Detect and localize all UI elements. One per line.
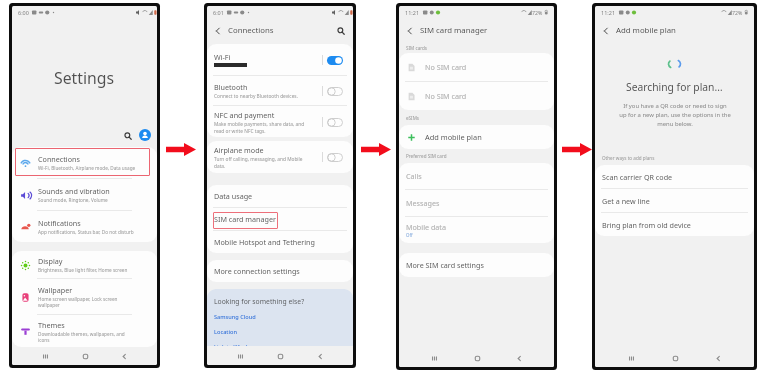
staticText: App notifications, Status bar, Do not di…	[38, 229, 134, 235]
button[interactable]: Samsung Cloud	[214, 313, 256, 321]
staticText: 72%	[732, 9, 743, 16]
button[interactable]: Wi-Fi toggle	[326, 55, 343, 65]
button[interactable]: Back	[711, 351, 725, 365]
button[interactable]: Link to Windows	[214, 343, 258, 346]
button[interactable]: Bluetooth	[207, 76, 353, 105]
button[interactable]: Home	[668, 351, 682, 365]
staticText: Wi-Fi, Bluetooth, Airplane mode, Data us…	[38, 165, 136, 171]
staticText: Preferred SIM card	[406, 153, 447, 159]
button[interactable]: Add mobile plan	[399, 125, 554, 149]
staticText: SIM card manager	[214, 214, 277, 224]
staticText: Sounds and vibration	[38, 186, 110, 196]
staticText: 72%	[532, 9, 543, 16]
staticText: Connections	[228, 25, 274, 36]
button[interactable]: Recents	[624, 351, 638, 365]
button[interactable]: Bluetooth toggle	[326, 86, 343, 96]
staticText: Bluetooth	[214, 82, 248, 92]
staticText: Themes	[38, 320, 65, 330]
button[interactable]: Location	[214, 328, 237, 336]
button[interactable]: Recents	[427, 351, 441, 365]
staticText: Connections	[38, 154, 80, 164]
button[interactable]: Wallpaper	[12, 279, 157, 314]
button[interactable]: Home	[470, 351, 484, 365]
button[interactable]: Bring plan from old device	[595, 213, 754, 236]
button[interactable]: More SIM card settings	[399, 253, 554, 277]
staticText: Calls	[406, 171, 422, 181]
staticText: Notifications	[38, 218, 81, 228]
staticText: Looking for something else?	[214, 297, 305, 306]
button[interactable]: Back	[117, 349, 131, 363]
button[interactable]: No SIM card	[399, 82, 554, 110]
staticText: Wallpaper	[38, 285, 73, 295]
staticText: Link to Windows	[214, 343, 258, 346]
staticText: Sound mode, Ringtone, Volume	[38, 197, 108, 203]
staticText: Add mobile plan	[616, 25, 676, 36]
button[interactable]: Home	[78, 349, 92, 363]
button[interactable]: Calls	[399, 163, 554, 189]
staticText: 11:21	[601, 9, 616, 16]
staticText: Display	[38, 256, 63, 266]
staticText: No SIM card	[425, 62, 467, 72]
button[interactable]: Scan carrier QR code	[595, 165, 754, 188]
staticText: SIM cards	[406, 45, 428, 51]
staticText: Turn off calling, messaging, and Mobile …	[214, 156, 303, 169]
button[interactable]: Recents	[38, 349, 52, 363]
button[interactable]: Data usage	[207, 185, 353, 207]
button[interactable]: SIM card manager	[207, 208, 353, 230]
button[interactable]: Recents	[233, 349, 247, 363]
staticText: 11:21	[405, 9, 420, 16]
button[interactable]: Search	[334, 24, 347, 37]
button[interactable]: Messages	[399, 190, 554, 216]
staticText: Mobile data	[406, 222, 446, 232]
staticText: Searching for plan…	[626, 80, 723, 94]
staticText: Add mobile plan	[425, 132, 482, 142]
button[interactable]: Home	[273, 349, 287, 363]
staticText: More connection settings	[214, 266, 300, 276]
staticText: Get a new line	[602, 196, 650, 206]
staticText: Off	[406, 232, 413, 238]
button[interactable]: Wi-Fi	[207, 44, 353, 75]
button[interactable]: No SIM card	[399, 53, 554, 81]
button[interactable]: Navigate up	[211, 24, 224, 37]
staticText: More SIM card settings	[406, 260, 484, 270]
button[interactable]: Airplane mode toggle	[326, 152, 343, 162]
staticText: SIM card manager	[420, 25, 488, 36]
staticText: Location	[214, 328, 237, 336]
staticText: Airplane mode	[214, 145, 264, 155]
staticText: Scan carrier QR code	[602, 172, 673, 182]
button[interactable]: Display	[12, 251, 157, 278]
button[interactable]: Connections	[12, 147, 157, 178]
staticText: Make mobile payments, share data, and re…	[214, 121, 305, 134]
staticText: Connect to nearby Bluetooth devices.	[214, 93, 298, 100]
button[interactable]: Mobile Hotspot and Tethering	[207, 231, 353, 253]
staticText: NFC and payment	[214, 110, 275, 120]
button[interactable]: Sounds and vibration	[12, 179, 157, 210]
staticText: eSIMs	[406, 115, 420, 121]
staticText: Bring plan from old device	[602, 220, 691, 230]
button[interactable]: Navigate up	[403, 24, 416, 37]
staticText: Brightness, Blue light filter, Home scre…	[38, 267, 128, 273]
button[interactable]: Airplane mode	[207, 141, 353, 173]
button[interactable]: Mobile data	[399, 217, 554, 243]
staticText: No SIM card	[425, 91, 467, 101]
button[interactable]: Get a new line	[595, 189, 754, 212]
button[interactable]: More connection settings	[207, 260, 353, 282]
button[interactable]: Notifications	[12, 211, 157, 242]
staticText: Wi-Fi	[214, 52, 231, 62]
button[interactable]: Search	[121, 129, 134, 142]
button[interactable]: Account	[139, 129, 151, 141]
button[interactable]: Back	[313, 349, 327, 363]
staticText: Settings	[54, 67, 115, 89]
button[interactable]: Back	[512, 351, 526, 365]
staticText: Messages	[406, 198, 440, 208]
staticText: Data usage	[214, 191, 253, 201]
button[interactable]: NFC and payment toggle	[326, 117, 343, 127]
staticText: Downloadable themes, wallpapers, and ico…	[38, 331, 125, 343]
button[interactable]: NFC and payment	[207, 106, 353, 137]
staticText: If you have a QR code or need to sign up…	[619, 102, 731, 127]
button[interactable]: Navigate up	[599, 24, 612, 37]
staticText: 6:01	[213, 9, 224, 16]
staticText: Home screen wallpaper, Lock screen wallp…	[38, 296, 118, 308]
button[interactable]: Themes	[12, 315, 157, 347]
staticText: Other ways to add plans	[602, 155, 655, 161]
